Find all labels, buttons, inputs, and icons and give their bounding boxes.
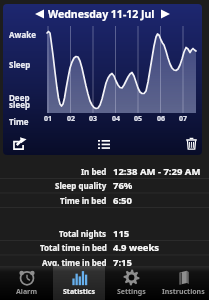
staticText: Settings [117,287,146,297]
staticText: 07 [179,114,188,124]
staticText: 06 [157,114,166,124]
button[interactable]: Sleep quality [0,178,209,193]
staticText: Total time in bed [40,242,107,253]
button[interactable]: Avg. time in bed [0,255,209,270]
staticText: 02 [67,114,76,124]
button[interactable]: Total nights [0,226,209,241]
staticText: Sleep [9,59,31,70]
button[interactable]: In bed [0,164,209,179]
button[interactable]: Delete [174,132,202,155]
staticText: Total nights [59,228,107,239]
staticText: Instructions [162,287,205,297]
staticText: Time [9,116,29,127]
button[interactable]: Total time in bed [0,240,209,255]
staticText: 05 [134,114,143,124]
staticText: 04 [112,114,121,124]
staticText: Time in bed [60,195,107,206]
button[interactable]: Statistics [53,266,105,300]
staticText: 03 [89,114,98,124]
staticText: Wednesday 11-12 Jul [48,7,155,21]
staticText: 6:50 [113,194,132,207]
staticText: 76% [113,179,133,192]
staticText: sleep [9,99,31,110]
staticText: In bed [81,166,107,177]
button[interactable]: Settings [105,266,157,300]
staticText: 4.9 weeks [113,241,160,254]
staticText: 7:15 [113,256,132,269]
staticText: Statistics [63,287,95,297]
button[interactable]: Alarm [0,266,53,300]
staticText: 12:38 AM - 7:29 AM [113,165,201,178]
staticText: Awake [9,29,36,40]
other: Next day [161,9,170,19]
staticText: 01 [44,114,53,124]
staticText: Sleep quality [55,180,107,191]
staticText: Deep [9,92,30,103]
button[interactable]: Share [3,132,37,155]
button[interactable]: Previous day [3,4,202,23]
staticText: 115 [113,227,130,240]
staticText: Avg. time in bed [42,257,107,268]
button[interactable]: List [87,132,121,155]
staticText: Alarm [16,287,38,297]
button[interactable]: Instructions [157,266,209,300]
button[interactable]: Time in bed [0,193,209,208]
other: Previous day [35,9,44,19]
